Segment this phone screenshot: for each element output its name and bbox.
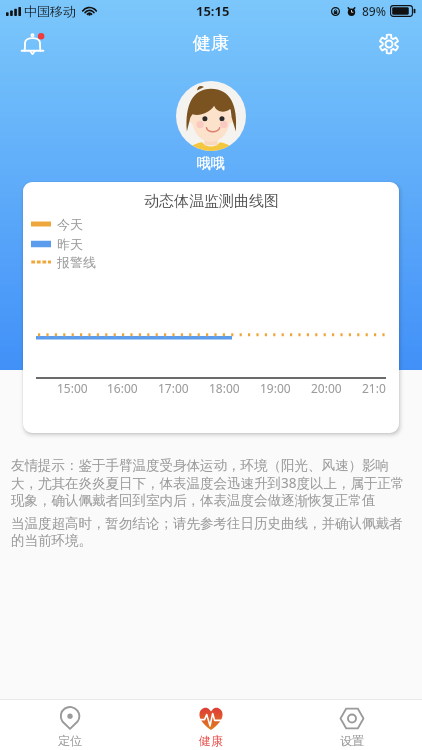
staticText: 报警线 [57,254,96,270]
button[interactable]: Notifications [12,24,52,64]
staticText: 18:00 [209,380,240,396]
staticText: 健康 [199,733,223,748]
staticText: 89% [362,3,386,19]
staticText: 16:00 [107,380,138,396]
staticText: 定位 [58,733,82,748]
staticText: 哦哦 [197,155,225,173]
staticText: 中国移动 [24,3,76,19]
staticText: 友情提示：鉴于手臂温度受身体运动，环境（阳光、风速）影响 大，尤其在炎炎夏日下，… [11,457,405,509]
staticText: 当温度超高时，暂勿结论；请先参考往日历史曲线，并确认佩戴者 的当前环境。 [11,515,403,549]
button[interactable]: 设置 [281,699,422,750]
staticText: 15:15 [196,2,230,20]
staticText: 21:00 [362,380,386,396]
staticText: 20:00 [311,380,342,396]
staticText: 设置 [340,733,364,748]
staticText: 19:00 [260,380,291,396]
button[interactable]: Settings [369,24,409,64]
button[interactable]: 健康 [140,699,281,750]
staticText: 今天 [57,216,83,232]
button[interactable]: 定位 [0,699,140,750]
staticText: 动态体温监测曲线图 [144,192,279,211]
staticText: 昨天 [57,236,83,252]
staticText: 17:00 [158,380,189,396]
staticText: 健康 [193,32,229,55]
button[interactable] [176,81,246,151]
staticText: 15:00 [57,380,88,396]
